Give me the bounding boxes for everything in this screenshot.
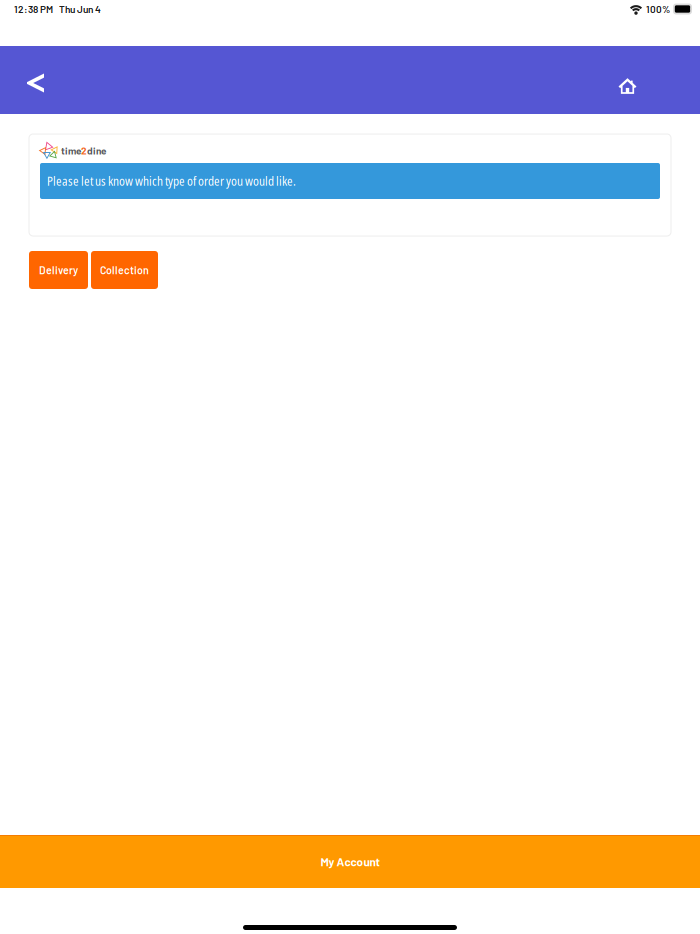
button[interactable]: Delivery [29, 251, 88, 289]
button[interactable]: Back [0, 46, 71, 114]
staticText: My Account [320, 854, 379, 869]
staticText: Collection [100, 264, 149, 276]
button[interactable]: My Account [0, 835, 700, 888]
staticText: 2 [81, 144, 87, 156]
button[interactable]: Home [592, 46, 700, 114]
staticText: 100% [646, 3, 670, 15]
button[interactable]: Collection [91, 251, 158, 289]
staticText: Delivery [39, 264, 78, 276]
staticText: dine [87, 144, 106, 156]
staticText: time [61, 144, 81, 156]
staticText: Please let us know which type of order y… [47, 173, 296, 189]
staticText: Thu Jun 4 [59, 3, 101, 15]
staticText: 12:38 PM [14, 3, 53, 15]
